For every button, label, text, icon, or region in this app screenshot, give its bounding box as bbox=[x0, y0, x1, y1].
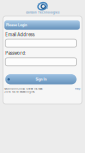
staticText: Help bbox=[75, 87, 81, 90]
button[interactable]: Sign In bbox=[5, 74, 76, 84]
button[interactable]: Help bbox=[75, 87, 81, 90]
staticText: Please Login bbox=[6, 23, 27, 27]
staticText: ©Gordon Cloud Server Inc Was 2016 NEW Te… bbox=[4, 87, 42, 93]
staticText: Gordon Technologies bbox=[26, 11, 59, 14]
staticText: Email Address: bbox=[5, 32, 35, 37]
staticText: Password: bbox=[5, 51, 26, 56]
staticText: Sign In bbox=[35, 77, 46, 81]
